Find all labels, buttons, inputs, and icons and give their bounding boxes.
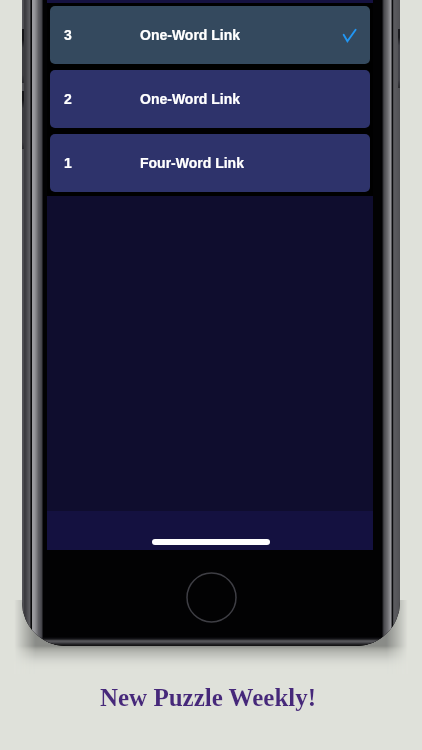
- button[interactable]: 2: [50, 70, 370, 128]
- other: Completed: [343, 29, 356, 42]
- staticText: 1: [64, 155, 72, 171]
- staticText: One-Word Link: [140, 91, 241, 107]
- staticText: New Puzzle Weekly!: [0, 684, 419, 712]
- button[interactable]: 1: [50, 134, 370, 192]
- button[interactable]: 3: [50, 6, 370, 64]
- staticText: Four-Word Link: [140, 155, 244, 171]
- other: Home: [186, 572, 237, 623]
- staticText: 3: [64, 27, 72, 43]
- staticText: 2: [64, 91, 72, 107]
- staticText: One-Word Link: [140, 27, 241, 43]
